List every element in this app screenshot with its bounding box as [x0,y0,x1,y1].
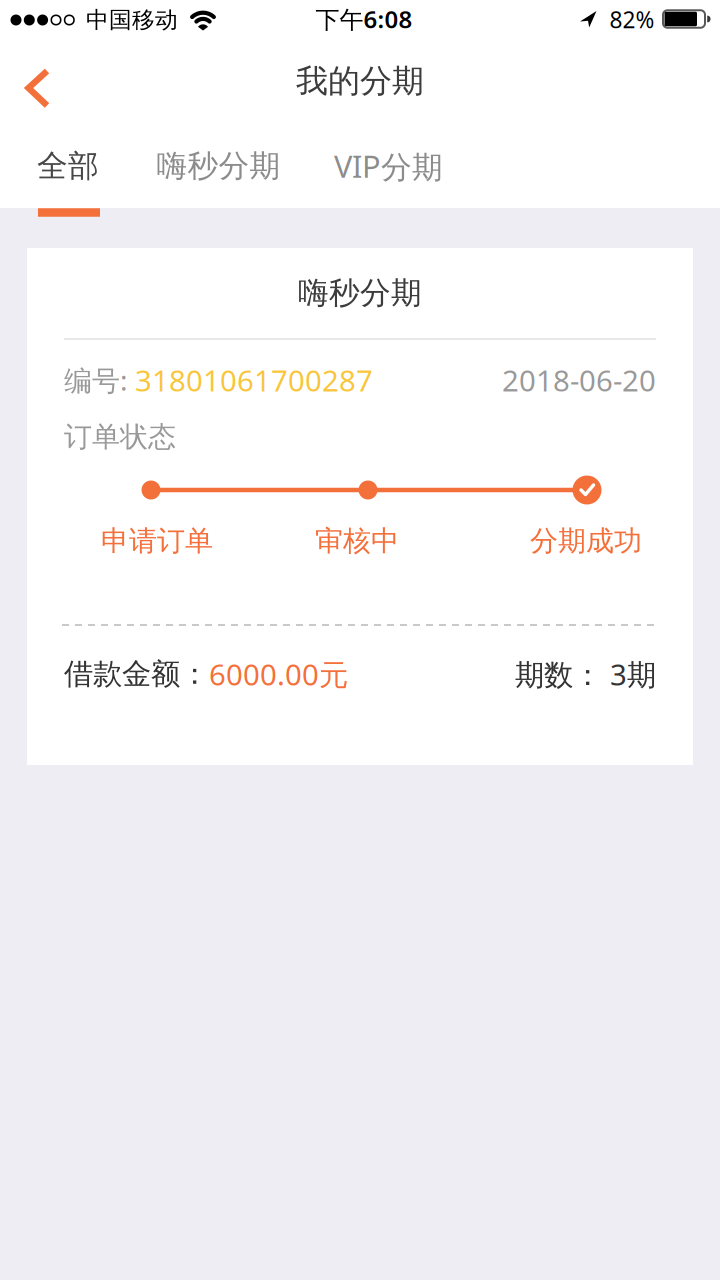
staticText: 借款金额： [64,656,209,692]
button[interactable]: 全部 [37,139,99,193]
staticText: 期数： 3期 [515,654,656,693]
staticText: 编号: [64,361,135,399]
button[interactable]: 返回 [12,59,64,118]
staticText: 嗨秒分期 [156,147,280,185]
staticText: 分期成功 [530,524,642,558]
staticText: 我的分期 [296,61,424,101]
button[interactable]: 嗨秒分期 [27,248,693,765]
button[interactable]: 嗨秒分期 [156,139,280,193]
staticText: 订单状态 [64,420,176,454]
button[interactable]: VIP分期 [334,138,443,194]
staticText: 2018-06-20 [502,360,656,399]
staticText: 中国移动 [86,6,178,34]
staticText: 申请订单 [101,524,213,558]
staticText: 6000.00元 [209,654,348,693]
staticText: 82% [609,4,654,34]
staticText: 审核中 [315,524,399,558]
staticText: 31801061700287 [135,360,373,399]
staticText: 嗨秒分期 [298,274,422,312]
staticText: VIP分期 [334,146,443,186]
staticText: 全部 [37,147,99,185]
staticText: 下午6:08 [315,3,412,35]
